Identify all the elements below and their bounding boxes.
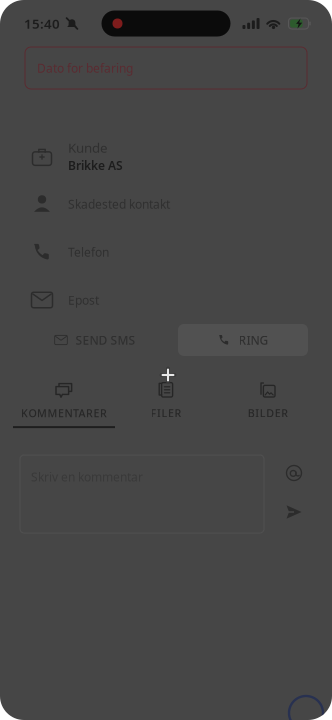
staticText: Kunde [68,139,108,156]
button[interactable]: KOMMENTARER [13,380,115,440]
staticText: 15:40 [24,15,60,32]
staticText: Skadested kontakt [68,196,170,212]
button[interactable]: FILER [115,380,217,440]
button[interactable]: Kunde [0,132,332,180]
staticText: Brikke AS [68,157,123,173]
staticText: Epost [68,292,99,308]
staticText: Telefon [68,244,109,260]
staticText: BILDER [248,406,288,420]
staticText: Skriv en kommentar [31,469,143,485]
button[interactable]: SEND SMS [24,324,166,356]
staticText: KOMMENTARER [21,406,107,420]
staticText: SEND SMS [76,332,136,348]
staticText: FILER [150,406,181,420]
button[interactable]: Mention someone [272,455,316,491]
staticText: Dato for befaring [37,60,133,76]
button[interactable]: New item [289,696,323,720]
staticText: RING [238,332,268,348]
button[interactable]: RING [178,324,308,356]
button[interactable]: Dato for befaring [25,47,307,89]
button[interactable]: Skadested kontakt [0,180,332,228]
button[interactable]: Send comment [272,491,316,533]
button[interactable]: BILDER [217,380,319,440]
